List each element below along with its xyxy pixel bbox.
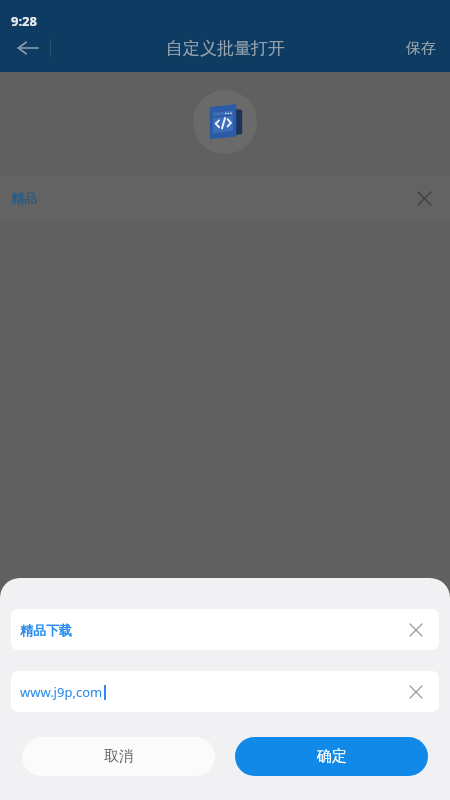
button[interactable]: www.j9p,com	[11, 671, 439, 712]
staticText: 自定义批量打开	[166, 38, 285, 59]
staticText: 9:28	[11, 12, 37, 30]
staticText: 取消	[104, 747, 134, 766]
staticText: www.j9p,com	[20, 683, 103, 701]
button[interactable]: 保存	[392, 31, 450, 66]
staticText: 确定	[317, 747, 347, 766]
button[interactable]: 确定	[235, 737, 428, 776]
button[interactable]: 精品	[0, 176, 450, 220]
button[interactable]: Clear text	[401, 615, 431, 645]
staticText: 保存	[406, 39, 436, 58]
staticText: 精品	[11, 190, 37, 206]
button[interactable]: Back	[8, 28, 48, 68]
button[interactable]: Clear text	[401, 677, 431, 707]
button[interactable]: 取消	[22, 737, 215, 776]
button[interactable]: Close	[408, 182, 440, 214]
staticText: 精品下载	[20, 622, 72, 638]
button[interactable]: 精品下载	[11, 609, 439, 650]
